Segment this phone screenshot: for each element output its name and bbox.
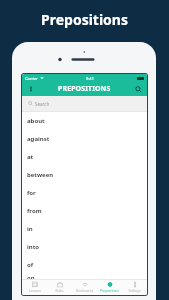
button[interactable]: Bookmarks xyxy=(72,280,97,295)
button[interactable]: about xyxy=(22,112,147,130)
staticText: 9:41 xyxy=(86,76,94,81)
staticText: on xyxy=(27,274,35,279)
button[interactable]: on xyxy=(22,274,147,279)
staticText: Bookmarks xyxy=(76,289,93,293)
staticText: for xyxy=(27,189,36,197)
button[interactable]: More options xyxy=(22,82,39,96)
staticText: between xyxy=(27,171,54,179)
staticText: at xyxy=(27,153,34,161)
button[interactable]: between xyxy=(22,166,147,184)
button[interactable]: Settings xyxy=(122,280,147,295)
button[interactable]: Prepositions xyxy=(97,280,122,295)
button[interactable]: Search xyxy=(130,82,147,96)
staticText: from xyxy=(27,207,42,215)
button[interactable]: from xyxy=(22,202,147,220)
button[interactable]: against xyxy=(22,130,147,148)
staticText: of xyxy=(27,261,34,269)
button[interactable]: Rules xyxy=(47,280,72,295)
button[interactable]: for xyxy=(22,184,147,202)
staticText: Lessons xyxy=(29,289,41,293)
staticText: into xyxy=(27,243,40,251)
button[interactable]: in xyxy=(22,220,147,238)
button[interactable]: at xyxy=(22,148,147,166)
button[interactable]: Search xyxy=(22,96,147,111)
button[interactable]: Lessons xyxy=(22,280,47,295)
staticText: PREPOSITIONS xyxy=(58,84,111,94)
staticText: Prepositions xyxy=(100,289,119,293)
staticText: Settings xyxy=(128,289,141,293)
staticText: Search xyxy=(35,101,50,107)
staticText: against xyxy=(27,135,50,143)
staticText: about xyxy=(27,117,45,125)
staticText: Carrier xyxy=(25,76,39,81)
staticText: in xyxy=(27,225,33,233)
button[interactable]: into xyxy=(22,238,147,256)
button[interactable]: of xyxy=(22,256,147,274)
staticText: Rules xyxy=(55,289,64,293)
staticText: Prepositions xyxy=(41,10,128,29)
